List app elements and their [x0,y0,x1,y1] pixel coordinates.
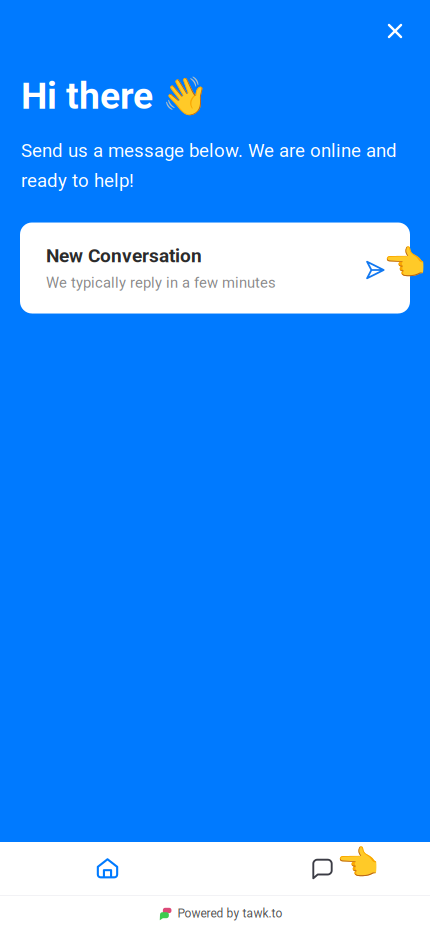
staticText: 👈 [383,243,426,284]
staticText: 👈 [336,843,379,884]
staticText: Hi there 👋 [21,74,208,118]
button[interactable]: New Conversation [20,222,410,313]
staticText: New Conversation [46,245,202,267]
staticText: Send us a message below. We are online a… [21,140,397,162]
button[interactable]: Close [376,12,414,50]
staticText: Powered by tawk.to [177,906,282,921]
staticText: We typically reply in a few minutes [46,274,276,291]
staticText: ready to help! [21,170,134,191]
button[interactable]: Messages [215,842,430,895]
button[interactable]: Home [0,842,215,895]
